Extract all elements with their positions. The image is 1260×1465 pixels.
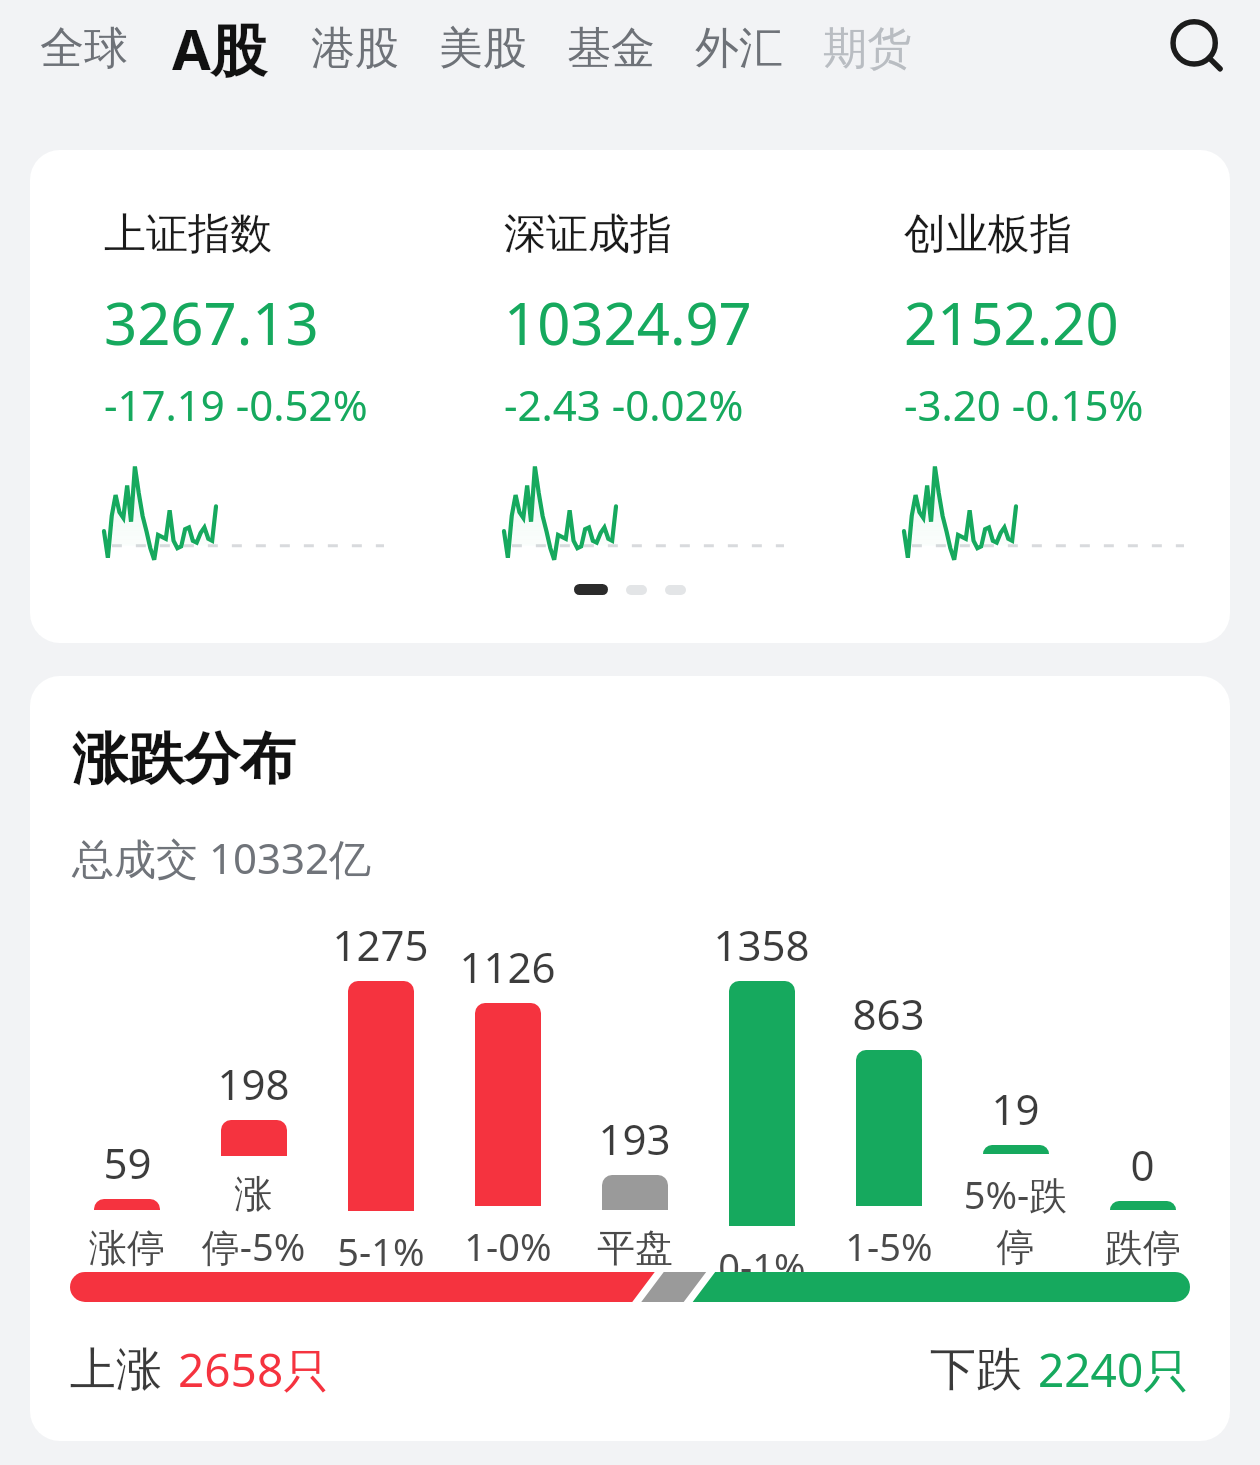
staticText: 2240只 (1038, 1338, 1190, 1401)
staticText: 平盘 (597, 1224, 673, 1272)
staticText: 上证指数 (104, 208, 272, 261)
button[interactable]: 全球 (40, 15, 128, 82)
staticText: -2.43 -0.02% (504, 376, 744, 433)
staticText: 198 (217, 1055, 290, 1112)
button[interactable]: 基金 (567, 15, 655, 82)
staticText: 涨跌分布 (72, 724, 296, 795)
staticText: 基金 (567, 21, 655, 76)
button[interactable]: Search (1150, 0, 1246, 96)
staticText: 跌停 (1105, 1224, 1181, 1272)
button[interactable]: 外汇 (695, 15, 783, 82)
staticText: 总成交 10332亿 (72, 829, 372, 886)
staticText: 863 (852, 985, 925, 1042)
staticText: 0-1% (718, 1240, 806, 1272)
staticText: 59 (103, 1134, 152, 1191)
button[interactable]: 期货 (823, 15, 911, 82)
button[interactable]: 美股 (439, 15, 527, 82)
staticText: 上涨 (70, 1341, 162, 1399)
staticText: 2152.20 (904, 283, 1119, 362)
button[interactable]: 涨跌分布 (30, 676, 1230, 1441)
staticText: 1-0% (464, 1220, 552, 1272)
staticText: 0 (1130, 1136, 1155, 1193)
staticText: 下跌 (930, 1341, 1022, 1399)
staticText: 涨停-5% (190, 1170, 317, 1272)
staticText: 19 (991, 1080, 1040, 1137)
staticText: 1126 (459, 938, 556, 995)
staticText: 期货 (823, 21, 911, 76)
staticText: -17.19 -0.52% (104, 376, 368, 433)
staticText: 外汇 (695, 21, 783, 76)
staticText: 10324.97 (504, 283, 752, 362)
staticText: 涨停 (89, 1224, 165, 1272)
staticText: -3.20 -0.15% (904, 376, 1144, 433)
staticText: 1358 (713, 916, 810, 973)
staticText: 5-1% (337, 1225, 425, 1272)
staticText: 美股 (439, 21, 527, 76)
staticText: 创业板指 (904, 208, 1072, 261)
button[interactable]: 上证指数 (30, 150, 1230, 643)
staticText: 5%-跌停 (952, 1168, 1079, 1272)
staticText: 全球 (40, 21, 128, 76)
staticText: A股 (172, 10, 267, 86)
button[interactable]: 港股 (311, 15, 399, 82)
staticText: 1-5% (845, 1220, 933, 1272)
staticText: 2658只 (178, 1338, 330, 1401)
staticText: 193 (598, 1110, 671, 1167)
staticText: 1275 (332, 916, 429, 973)
staticText: 港股 (311, 21, 399, 76)
staticText: 深证成指 (504, 208, 672, 261)
button[interactable]: A股 (172, 4, 267, 92)
staticText: 3267.13 (104, 283, 319, 362)
